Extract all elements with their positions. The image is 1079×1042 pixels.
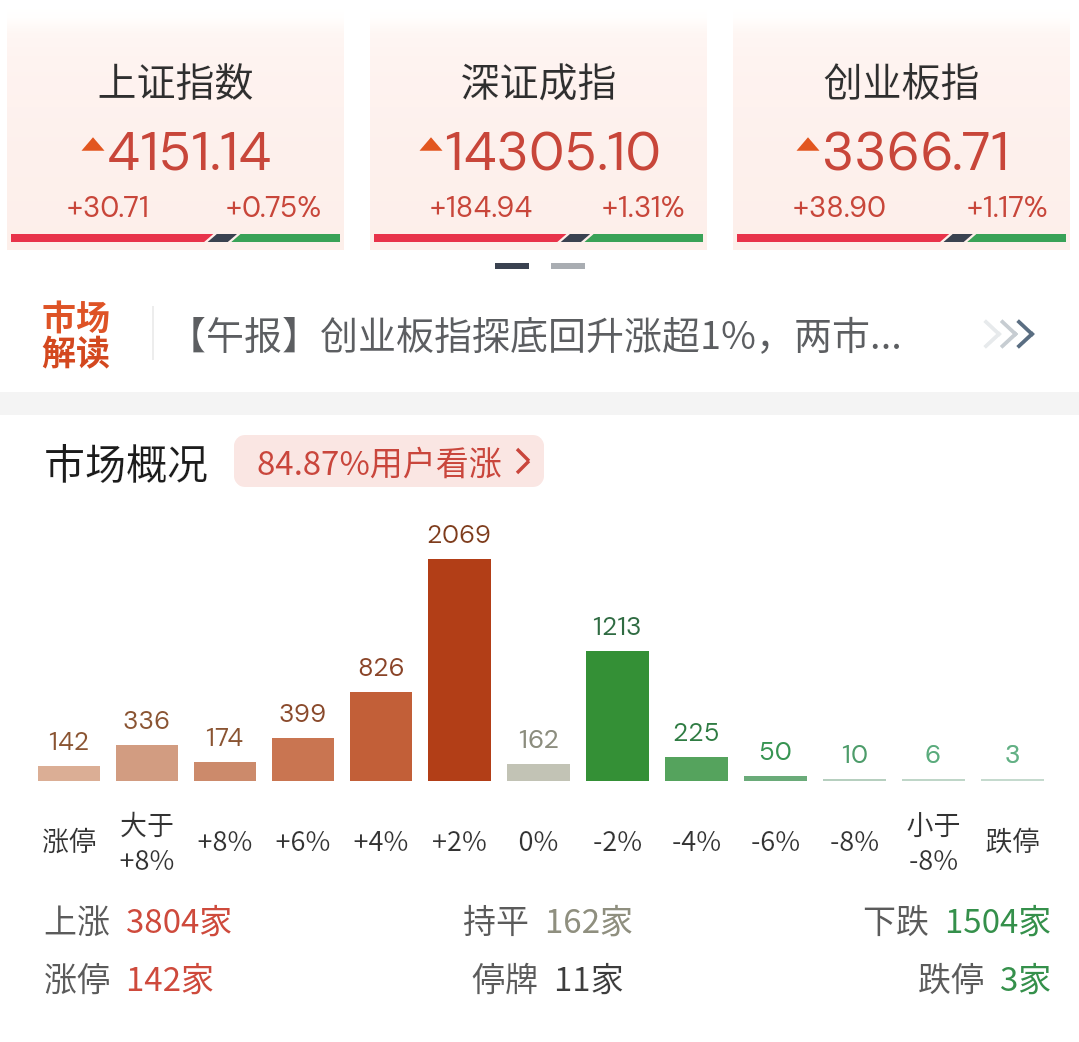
staticText: 3家 — [1000, 953, 1052, 1001]
staticText: -8% — [894, 839, 973, 878]
staticText: 336 — [123, 703, 171, 737]
staticText: -6% — [736, 820, 815, 859]
staticText: +4% — [342, 820, 420, 859]
button[interactable]: 深证成指 — [370, 7, 707, 250]
staticText: 3 — [1005, 737, 1021, 771]
staticText: 市场 — [42, 291, 110, 340]
staticText: 0% — [499, 820, 578, 859]
staticText: +30.71 — [67, 188, 149, 226]
staticText: 142 — [49, 724, 90, 758]
staticText: 下跌 — [863, 895, 929, 943]
staticText: -4% — [657, 820, 736, 859]
staticText: 涨停 — [30, 820, 108, 859]
staticText: +184.94 — [430, 188, 533, 226]
staticText: 小于 — [894, 804, 973, 843]
staticText: 上证指数 — [7, 51, 344, 107]
staticText: 上涨 — [44, 895, 110, 943]
staticText: 225 — [673, 715, 720, 749]
button[interactable]: 上证指数 — [7, 7, 344, 250]
staticText: -2% — [578, 820, 657, 859]
button[interactable]: 创业板指 — [733, 7, 1070, 250]
other: More news — [985, 321, 1037, 347]
staticText: -8% — [815, 820, 894, 859]
button[interactable]: 市场 — [0, 278, 1079, 392]
staticText: 2069 — [427, 517, 492, 551]
staticText: 162家 — [545, 895, 633, 943]
staticText: +0.75% — [226, 188, 322, 226]
staticText: 14305.10 — [445, 116, 661, 186]
staticText: 【午报】创业板指探底回升涨超1%，两市... — [168, 305, 988, 360]
staticText: 11家 — [554, 953, 624, 1001]
staticText: 深证成指 — [370, 51, 707, 107]
staticText: 停牌 — [472, 953, 538, 1001]
staticText: +6% — [264, 820, 342, 859]
staticText: 84.87%用户看涨 — [257, 437, 502, 485]
staticText: 跌停 — [973, 820, 1052, 859]
staticText: 4151.14 — [107, 116, 272, 186]
staticText: 162 — [519, 722, 559, 756]
staticText: +1.31% — [602, 188, 685, 226]
staticText: +38.90 — [793, 188, 887, 226]
staticText: +8% — [186, 820, 264, 859]
staticText: 142家 — [126, 953, 214, 1001]
staticText: 826 — [358, 650, 405, 684]
staticText: 创业板指 — [733, 51, 1070, 107]
staticText: 399 — [279, 696, 327, 730]
staticText: 3366.71 — [822, 116, 1010, 186]
staticText: 6 — [925, 737, 942, 771]
staticText: 持平 — [463, 895, 529, 943]
staticText: 3804家 — [126, 895, 233, 943]
staticText: 解读 — [42, 326, 110, 375]
staticText: 1504家 — [945, 895, 1052, 943]
staticText: 市场概况 — [44, 431, 208, 490]
staticText: 50 — [759, 734, 792, 768]
staticText: +1.17% — [967, 188, 1048, 226]
staticText: 174 — [206, 720, 244, 754]
staticText: 跌停 — [918, 953, 984, 1001]
staticText: +2% — [420, 820, 499, 859]
staticText: 大于 — [108, 804, 186, 843]
staticText: 1213 — [593, 609, 642, 643]
staticText: 涨停 — [44, 953, 110, 1001]
staticText: +8% — [108, 839, 186, 878]
staticText: 10 — [842, 737, 868, 771]
button[interactable]: 84.87%用户看涨 — [234, 435, 544, 487]
